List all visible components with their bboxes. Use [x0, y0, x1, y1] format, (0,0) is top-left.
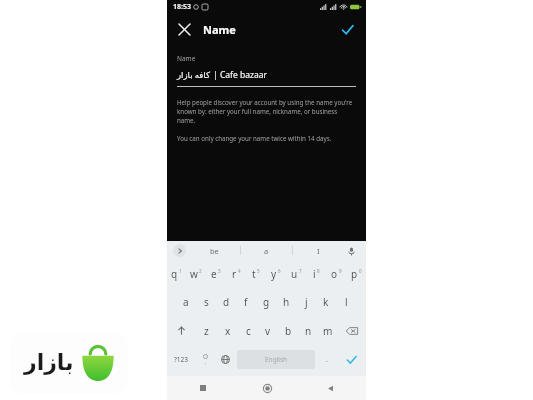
staticText: You can only change your name twice with… [177, 134, 332, 142]
button[interactable]: I [293, 241, 344, 260]
button[interactable]: k [316, 288, 336, 316]
staticText: t [252, 267, 256, 281]
staticText: . [326, 355, 328, 365]
staticText: 0 [359, 268, 362, 274]
button[interactable]: n [298, 316, 318, 345]
button[interactable]: s [196, 288, 216, 316]
staticText: n [305, 324, 312, 338]
button[interactable]: Voice input [344, 244, 358, 258]
staticText: , [205, 359, 207, 366]
staticText: 9 [339, 268, 342, 274]
button[interactable]: t [246, 260, 266, 288]
staticText: c [246, 324, 251, 338]
staticText: r [232, 267, 237, 281]
staticText: 1 [179, 268, 182, 274]
staticText: d [223, 295, 230, 309]
button[interactable]: Enter [337, 345, 366, 374]
button[interactable]: d [216, 288, 236, 316]
button[interactable]: j [296, 288, 316, 316]
button[interactable]: Home [257, 378, 277, 398]
staticText: b [285, 324, 292, 338]
staticText: j [305, 295, 308, 309]
staticText: English [265, 355, 288, 364]
staticText: z [204, 324, 209, 338]
staticText: Help people discover your account by usi… [177, 98, 356, 125]
staticText: g [263, 295, 270, 309]
staticText: a [264, 246, 269, 256]
button[interactable]: b [278, 316, 298, 345]
button[interactable]: Recent apps [193, 378, 213, 398]
button[interactable]: Back [320, 378, 340, 398]
staticText: m [323, 324, 333, 338]
button[interactable]: m [318, 316, 338, 345]
staticText: q [171, 267, 178, 281]
staticText: u [291, 267, 298, 281]
staticText: v [265, 324, 271, 338]
button[interactable]: p [346, 260, 366, 288]
button[interactable]: u [286, 260, 306, 288]
staticText: بازار [24, 350, 74, 376]
button[interactable]: Done [334, 16, 360, 42]
button[interactable]: Emoji [195, 345, 215, 374]
staticText: p [351, 267, 358, 281]
staticText: a [183, 295, 189, 309]
button[interactable]: w [186, 260, 206, 288]
button[interactable]: q [167, 260, 186, 288]
staticText: 3 [218, 268, 221, 274]
staticText: کافه بازار [177, 69, 210, 81]
staticText: 4 [238, 268, 241, 274]
button[interactable]: a [241, 241, 292, 260]
button[interactable]: ?123 [167, 345, 195, 374]
button[interactable]: More suggestions [173, 244, 186, 257]
button[interactable]: r [226, 260, 246, 288]
button[interactable]: z [196, 316, 217, 345]
button[interactable]: f [236, 288, 256, 316]
staticText: h [283, 295, 290, 309]
button[interactable]: v [258, 316, 278, 345]
button[interactable]: i [306, 260, 326, 288]
button[interactable]: a [176, 288, 196, 316]
staticText: 5 [257, 268, 260, 274]
button[interactable]: l [336, 288, 356, 316]
button[interactable]: c [238, 316, 258, 345]
staticText: ?123 [174, 355, 188, 364]
staticText: Name [203, 22, 236, 37]
staticText: l [345, 295, 348, 309]
staticText: s [204, 295, 209, 309]
staticText: o [331, 267, 338, 281]
button[interactable]: Cafe Bazaar [10, 332, 128, 394]
button[interactable]: Close [171, 16, 197, 42]
staticText: | Cafe bazaar [213, 69, 268, 81]
staticText: e [211, 267, 217, 281]
staticText: f [244, 295, 248, 309]
button[interactable]: e [206, 260, 226, 288]
staticText: 18:53 [173, 2, 191, 12]
staticText: k [323, 295, 329, 309]
staticText: x [225, 324, 231, 338]
staticText: i [313, 267, 316, 281]
staticText: 2 [199, 268, 202, 274]
staticText: 8 [317, 268, 320, 274]
staticText: be [210, 246, 219, 256]
staticText: Name [177, 54, 196, 63]
staticText: I [317, 246, 320, 256]
button[interactable]: be [189, 241, 240, 260]
button[interactable]: English [237, 350, 315, 369]
button[interactable]: o [326, 260, 346, 288]
staticText: 7 [299, 268, 302, 274]
button[interactable]: y [266, 260, 286, 288]
staticText: w [190, 267, 198, 281]
staticText: y [271, 267, 277, 281]
button[interactable]: Change keyboard language [215, 345, 235, 374]
button[interactable]: Shift [167, 316, 196, 345]
button[interactable]: x [217, 316, 238, 345]
button[interactable]: g [256, 288, 276, 316]
button[interactable]: Delete [338, 316, 366, 345]
staticText: 6 [278, 268, 281, 274]
button[interactable]: h [276, 288, 296, 316]
